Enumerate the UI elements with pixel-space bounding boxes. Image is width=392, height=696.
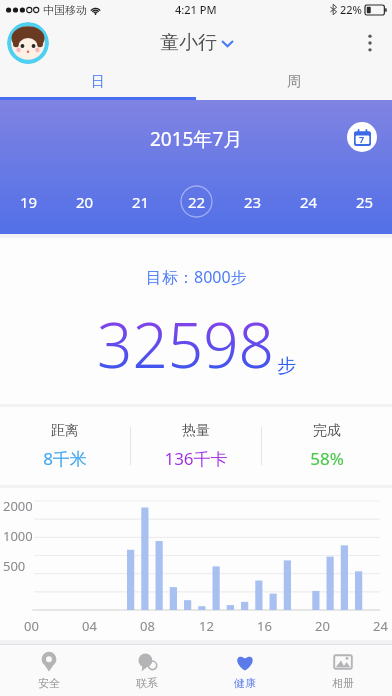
button[interactable]: 联系 bbox=[98, 645, 196, 696]
staticText: 500 bbox=[3, 557, 26, 575]
staticText: 安全 bbox=[38, 676, 60, 690]
button[interactable]: 完成 bbox=[262, 407, 392, 485]
staticText: 32598 bbox=[97, 302, 275, 386]
staticText: 8千米 bbox=[43, 447, 87, 470]
button[interactable]: 23 bbox=[236, 185, 269, 218]
staticText: 23 bbox=[244, 192, 262, 212]
staticText: 健康 bbox=[234, 676, 256, 690]
staticText: 日 bbox=[91, 73, 105, 91]
staticText: 58% bbox=[310, 447, 344, 470]
staticText: 12 bbox=[199, 617, 214, 635]
staticText: 2000 bbox=[3, 497, 33, 515]
button[interactable]: 健康 bbox=[196, 645, 294, 696]
staticText: 4:21 PM bbox=[175, 2, 217, 17]
button[interactable]: 24 bbox=[292, 185, 325, 218]
staticText: 24 bbox=[373, 617, 388, 635]
button[interactable]: 22 bbox=[180, 185, 213, 218]
button[interactable]: 安全 bbox=[0, 645, 98, 696]
staticText: 步 bbox=[277, 354, 296, 378]
staticText: 04 bbox=[82, 617, 97, 635]
button[interactable]: More options bbox=[348, 21, 392, 65]
button[interactable]: Profile avatar bbox=[7, 22, 49, 64]
staticText: 00 bbox=[24, 617, 39, 635]
button[interactable]: 25 bbox=[348, 185, 381, 218]
staticText: 20 bbox=[315, 617, 330, 635]
staticText: 24 bbox=[300, 192, 318, 212]
button[interactable]: 19 bbox=[12, 185, 45, 218]
staticText: 08 bbox=[140, 617, 155, 635]
staticText: 2015年7月 bbox=[150, 126, 243, 152]
staticText: 22% bbox=[340, 2, 362, 17]
button[interactable]: 热量 bbox=[131, 407, 261, 485]
staticText: 19 bbox=[20, 192, 38, 212]
staticText: 25 bbox=[356, 192, 374, 212]
staticText: 联系 bbox=[136, 676, 158, 690]
button[interactable]: 日 bbox=[0, 66, 196, 97]
staticText: 目标：8000步 bbox=[146, 266, 247, 288]
staticText: 周 bbox=[287, 73, 301, 91]
button[interactable]: 周 bbox=[196, 66, 392, 97]
staticText: 7 bbox=[359, 133, 365, 145]
staticText: 相册 bbox=[332, 676, 354, 690]
staticText: 20 bbox=[76, 192, 94, 212]
button[interactable]: 童小行 bbox=[154, 29, 239, 57]
staticText: 完成 bbox=[313, 422, 341, 440]
staticText: 136千卡 bbox=[164, 447, 228, 470]
staticText: 16 bbox=[257, 617, 272, 635]
button[interactable]: 距离 bbox=[0, 407, 130, 485]
staticText: 热量 bbox=[182, 422, 210, 440]
staticText: 21 bbox=[132, 192, 150, 212]
staticText: 距离 bbox=[51, 422, 79, 440]
button[interactable]: Open calendar bbox=[347, 122, 377, 152]
staticText: 童小行 bbox=[160, 31, 217, 55]
staticText: 中国移动 bbox=[43, 3, 87, 17]
staticText: 22 bbox=[188, 192, 206, 212]
staticText: 1000 bbox=[3, 527, 33, 545]
button[interactable]: 相册 bbox=[294, 645, 392, 696]
button[interactable]: 21 bbox=[124, 185, 157, 218]
button[interactable]: 20 bbox=[68, 185, 101, 218]
